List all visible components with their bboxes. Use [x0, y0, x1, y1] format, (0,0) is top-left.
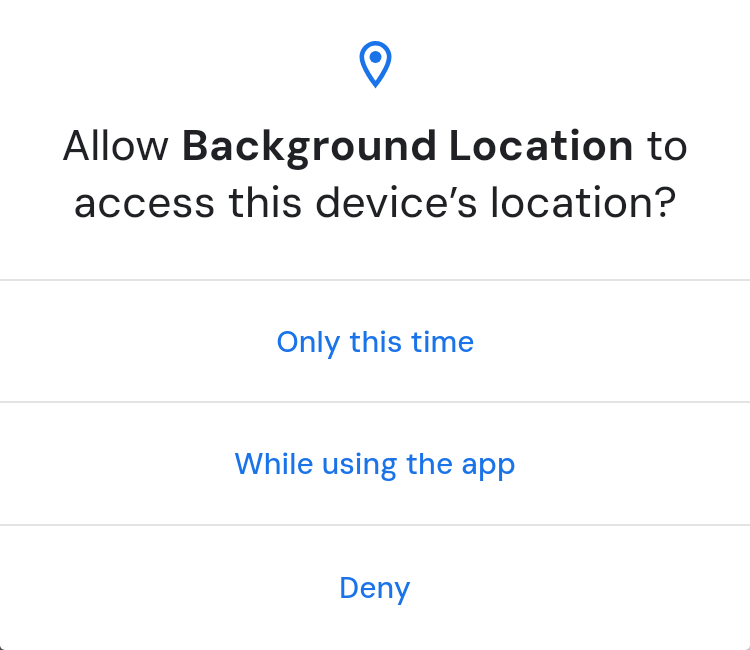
button[interactable]: Deny — [0, 526, 750, 649]
staticText: Allow Background Location to access this… — [0, 117, 750, 231]
button[interactable]: While using the app — [0, 403, 750, 524]
button[interactable]: Only this time — [0, 281, 750, 401]
staticText: Deny — [339, 568, 411, 607]
staticText: While using the app — [234, 444, 516, 483]
staticText: Only this time — [276, 322, 475, 361]
